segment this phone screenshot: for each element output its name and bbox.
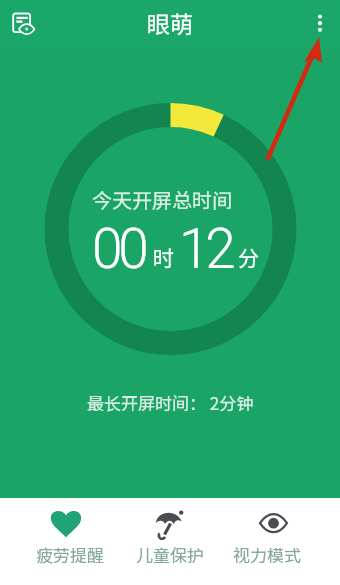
staticText: 今天开屏总时间 <box>92 185 232 214</box>
staticText: 疲劳提醒 <box>36 542 104 567</box>
button[interactable]: 视力模式 <box>220 506 314 576</box>
staticText: 时 <box>153 242 174 272</box>
staticText: 12 <box>179 217 232 281</box>
button[interactable]: 疲劳提醒 <box>23 506 117 576</box>
button[interactable]: More options <box>300 0 340 40</box>
staticText: 视力模式 <box>233 542 301 567</box>
staticText: 分 <box>238 242 259 272</box>
staticText: 儿童保护 <box>136 542 204 567</box>
button[interactable]: 儿童保护 <box>123 506 217 576</box>
staticText: 最长开屏时间： 2分钟 <box>87 390 254 415</box>
staticText: 眼萌 <box>147 6 193 39</box>
staticText: 00 <box>92 217 145 281</box>
button[interactable]: Usage report <box>2 3 42 43</box>
